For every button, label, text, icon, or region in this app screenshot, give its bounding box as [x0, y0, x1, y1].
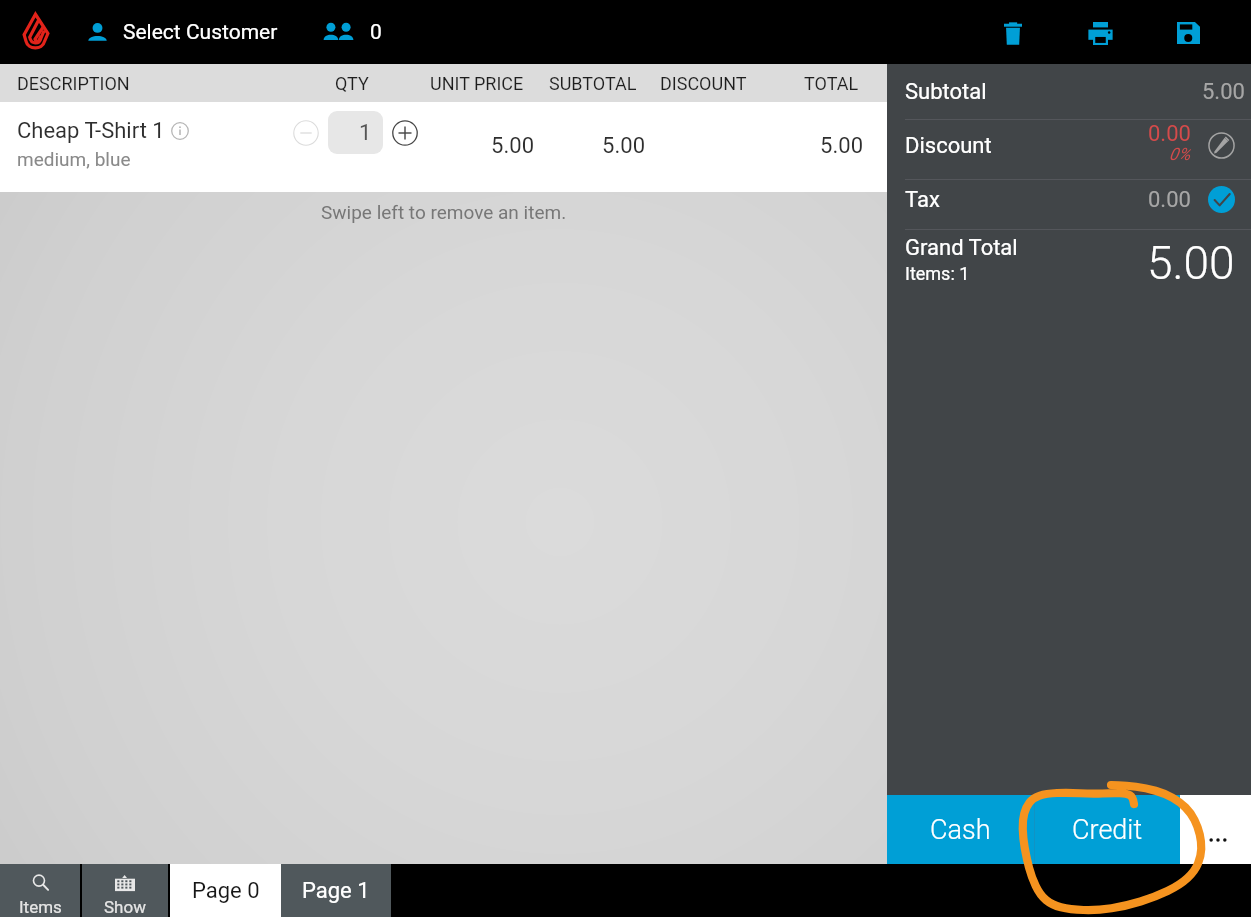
staticText: QTY: [335, 73, 369, 94]
staticText: 5.00: [1147, 236, 1235, 290]
staticText: 1: [359, 120, 372, 146]
button[interactable]: Lightspeed home: [22, 12, 50, 53]
staticText: Items: [19, 897, 62, 917]
staticText: TOTAL: [804, 73, 859, 94]
staticText: Show: [104, 897, 146, 917]
staticText: 5.00: [779, 133, 863, 159]
button[interactable]: Subtotal: [887, 65, 1251, 119]
staticText: Select Customer: [123, 20, 278, 45]
staticText: Subtotal: [905, 79, 987, 105]
staticText: DESCRIPTION: [17, 73, 130, 94]
staticText: Tax: [905, 187, 940, 213]
button[interactable]: Decrease quantity: [288, 115, 324, 151]
staticText: Swipe left to remove an item.: [321, 201, 567, 223]
staticText: Page 1: [302, 878, 370, 904]
button[interactable]: Page 1: [281, 864, 391, 917]
staticText: 5.00: [1202, 79, 1245, 105]
staticText: DISCOUNT: [660, 73, 747, 94]
staticText: 0%: [1169, 144, 1191, 164]
staticText: 0.00: [1148, 121, 1191, 147]
button[interactable]: 1: [328, 111, 383, 154]
staticText: 5.00: [450, 133, 534, 159]
staticText: 5.00: [561, 133, 645, 159]
button[interactable]: Delete sale: [984, 0, 1042, 64]
button[interactable]: More payment options: [1180, 795, 1251, 864]
button[interactable]: Increase quantity: [387, 115, 423, 151]
button[interactable]: 0: [319, 9, 386, 56]
button[interactable]: Tax applied: [1208, 186, 1235, 213]
staticText: Page 0: [192, 878, 260, 904]
staticText: 0.00: [1148, 187, 1191, 213]
staticText: Cash: [930, 814, 991, 846]
button[interactable]: Cheap T-Shirt 1: [0, 102, 887, 192]
button[interactable]: Save sale: [1159, 0, 1217, 64]
button[interactable]: Tax: [887, 180, 1251, 229]
staticText: Discount: [905, 133, 992, 159]
staticText: 0: [370, 20, 382, 45]
staticText: Credit: [1072, 814, 1143, 846]
button[interactable]: Edit discount: [1208, 132, 1235, 159]
button[interactable]: Cash: [887, 795, 1034, 864]
staticText: Items: 1: [905, 263, 970, 284]
button[interactable]: Print receipt: [1071, 0, 1129, 64]
staticText: Cheap T-Shirt 1: [17, 118, 165, 144]
button[interactable]: Discount: [887, 120, 1251, 179]
button[interactable]: Items: [0, 864, 80, 917]
button[interactable]: Select Customer: [82, 12, 282, 53]
staticText: Grand Total: [905, 235, 1018, 261]
button[interactable]: Show: [82, 864, 168, 917]
staticText: SUBTOTAL: [549, 73, 637, 94]
staticText: UNIT PRICE: [430, 73, 524, 94]
button[interactable]: Page 0: [170, 864, 281, 917]
button[interactable]: Credit: [1035, 795, 1180, 864]
staticText: medium, blue: [17, 148, 131, 170]
